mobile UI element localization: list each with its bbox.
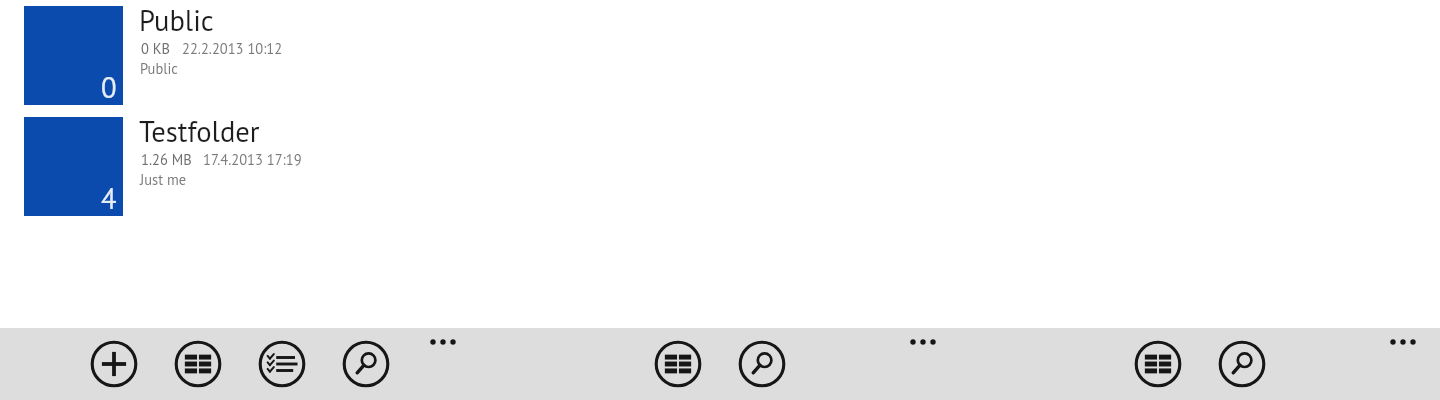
button[interactable]: 0 [0,0,1440,105]
button[interactable]: Search [338,336,394,392]
button[interactable]: Grid view [170,336,226,392]
staticText: 17.4.2013 17:19 [203,150,302,169]
staticText: Just me [140,170,187,189]
button[interactable]: Select items [254,336,310,392]
button[interactable]: More options [1375,328,1431,364]
staticText: Public [140,59,178,78]
button[interactable]: Grid view [650,336,706,392]
button[interactable]: Search [734,336,790,392]
button[interactable]: Add [86,336,142,392]
button[interactable]: More options [895,328,951,364]
button[interactable]: 4 [0,105,1440,216]
staticText: 4 [101,180,117,217]
button[interactable]: Search [1214,336,1270,392]
staticText: Public [139,2,214,39]
staticText: 0 KB [141,39,171,58]
staticText: 0 [101,69,117,106]
staticText: Testfolder [139,113,260,150]
staticText: 1.26 MB [141,150,192,169]
button[interactable]: More options [415,328,471,364]
button[interactable]: Grid view [1130,336,1186,392]
staticText: 22.2.2013 10:12 [182,39,283,58]
